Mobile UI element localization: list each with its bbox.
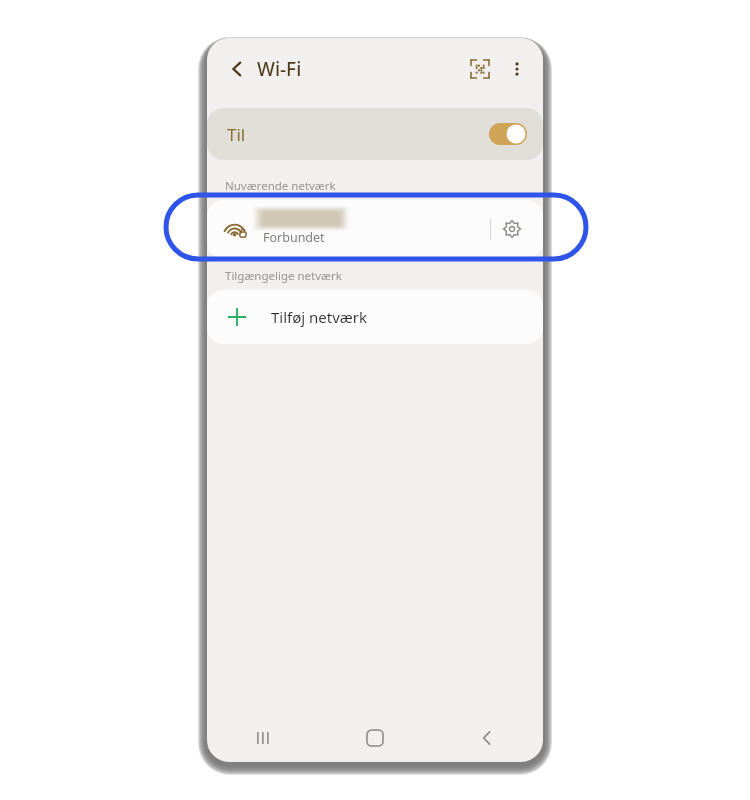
staticText: Nuværende netværk [225,178,336,194]
button[interactable]: Flere valgmuligheder [499,51,535,87]
staticText: Tilføj netværk [271,307,368,327]
button[interactable]: Til [207,108,543,160]
staticText: Forbundet [263,229,325,246]
button[interactable]: Seneste apps [207,714,319,762]
staticText: Tilgængelige netværk [225,268,342,284]
staticText: Wi-Fi [257,56,302,82]
button[interactable]: Scan QR-kode [461,50,499,88]
staticText: Til [227,123,246,146]
button[interactable]: Netværksindstillinger [491,208,533,250]
button[interactable]: Forbundet [207,200,543,258]
button[interactable]: Tilbage [217,49,257,89]
button[interactable]: Hjem [319,714,431,762]
button[interactable]: Tilbage [431,714,543,762]
button[interactable]: Tilføj netværk [207,290,543,344]
